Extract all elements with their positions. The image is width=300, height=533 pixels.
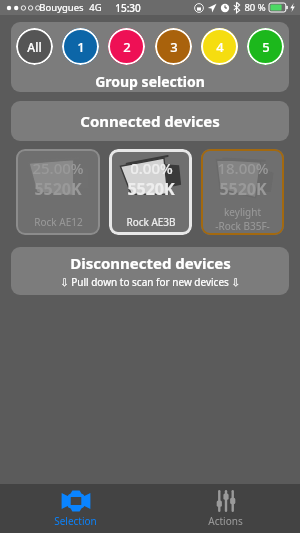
staticText: 15:30 <box>115 1 141 15</box>
button[interactable]: 4 <box>201 28 238 65</box>
other: Selection <box>61 490 91 512</box>
staticText: 5520K <box>127 178 175 200</box>
staticText: ⇩ Pull down to scan for new devices ⇩ <box>60 275 240 289</box>
staticText: -Rock B35F- <box>215 219 270 231</box>
staticText: Disconnected devices <box>70 253 231 273</box>
button[interactable]: Connected devices <box>11 101 289 141</box>
button[interactable]: 0.00% <box>109 149 192 235</box>
staticText: 18.00% <box>217 158 269 178</box>
staticText: 4G <box>89 1 102 14</box>
button[interactable]: Disconnected devices <box>11 247 289 295</box>
staticText: Connected devices <box>80 111 220 131</box>
other: Actions <box>214 490 238 512</box>
staticText: All <box>27 39 42 55</box>
staticText: 1 <box>77 38 85 56</box>
staticText: 25.00% <box>32 158 84 178</box>
button[interactable]: 3 <box>155 28 192 65</box>
staticText: 0.00% <box>130 158 173 178</box>
button[interactable]: Actions <box>150 484 300 533</box>
staticText: Bouygues <box>39 1 84 14</box>
staticText: Group selection <box>95 72 205 91</box>
button[interactable]: All <box>16 28 53 65</box>
staticText: 5 <box>262 38 270 56</box>
staticText: Actions <box>208 514 243 528</box>
button[interactable]: 2 <box>108 28 145 65</box>
staticText: 3 <box>170 38 178 56</box>
staticText: Rock AE3B <box>126 215 176 229</box>
staticText: 4 <box>216 38 224 56</box>
staticText: Rock AE12 <box>34 215 83 229</box>
button[interactable]: 25.00% <box>16 149 100 235</box>
button[interactable]: 1 <box>62 28 99 65</box>
staticText: 2 <box>123 38 131 56</box>
staticText: 5520K <box>34 178 82 200</box>
button[interactable]: Selection <box>0 484 150 533</box>
staticText: 5520K <box>219 178 267 200</box>
staticText: Selection <box>54 514 97 528</box>
staticText: keylight <box>224 205 261 219</box>
button[interactable]: 5 <box>247 28 284 65</box>
button[interactable]: 18.00% <box>201 149 284 235</box>
staticText: 80 % <box>244 1 266 14</box>
